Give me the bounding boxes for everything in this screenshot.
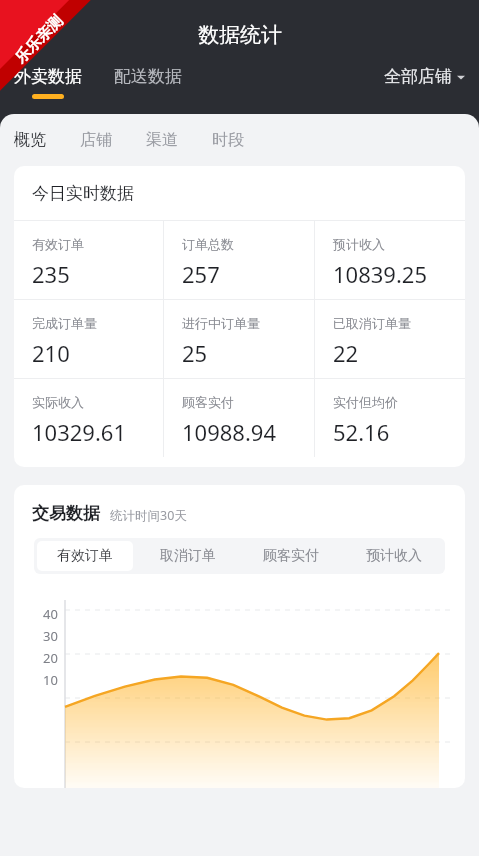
staticText: 外卖数据 bbox=[14, 66, 82, 87]
button[interactable]: 概览 bbox=[14, 130, 46, 150]
button[interactable]: 渠道 bbox=[146, 130, 178, 150]
staticText: 有效订单 bbox=[57, 547, 113, 565]
staticText: 10329.61 bbox=[32, 417, 126, 447]
staticText: 取消订单 bbox=[160, 547, 216, 565]
staticText: 乐乐亲测 bbox=[11, 12, 67, 67]
staticText: 配送数据 bbox=[114, 66, 182, 87]
staticText: 概览 bbox=[14, 130, 46, 150]
staticText: 完成订单量 bbox=[32, 315, 97, 331]
button[interactable]: 进行中订单量 bbox=[164, 300, 314, 378]
staticText: 10839.25 bbox=[333, 259, 427, 289]
staticText: 预计收入 bbox=[333, 236, 385, 252]
staticText: 30 bbox=[43, 627, 58, 645]
staticText: 预计收入 bbox=[366, 547, 422, 565]
staticText: 25 bbox=[182, 338, 208, 368]
button[interactable]: 实付但均价 bbox=[315, 379, 465, 457]
button[interactable]: 预计收入 bbox=[345, 541, 442, 571]
staticText: 40 bbox=[43, 605, 58, 623]
button[interactable]: 全部店铺 bbox=[384, 66, 465, 87]
staticText: 交易数据 bbox=[32, 503, 100, 524]
staticText: 22 bbox=[333, 338, 359, 368]
staticText: 52.16 bbox=[333, 417, 390, 447]
staticText: 实际收入 bbox=[32, 394, 84, 410]
staticText: 257 bbox=[182, 259, 220, 289]
staticText: 订单总数 bbox=[182, 236, 234, 252]
staticText: 渠道 bbox=[146, 130, 178, 150]
button[interactable]: 预计收入 bbox=[315, 221, 465, 299]
button[interactable]: 取消订单 bbox=[139, 541, 236, 571]
other: Select shop bbox=[457, 73, 465, 81]
button[interactable]: 顾客实付 bbox=[164, 379, 314, 457]
staticText: 235 bbox=[32, 259, 70, 289]
staticText: 顾客实付 bbox=[182, 394, 234, 410]
staticText: 已取消订单量 bbox=[333, 315, 411, 331]
button[interactable]: 时段 bbox=[212, 130, 244, 150]
button[interactable]: 店铺 bbox=[80, 130, 112, 150]
staticText: 210 bbox=[32, 338, 70, 368]
staticText: 实付但均价 bbox=[333, 394, 398, 410]
button[interactable]: 订单总数 bbox=[164, 221, 314, 299]
button[interactable]: 已取消订单量 bbox=[315, 300, 465, 378]
staticText: 顾客实付 bbox=[263, 547, 319, 565]
staticText: 有效订单 bbox=[32, 236, 84, 252]
button[interactable]: 有效订单 bbox=[14, 221, 163, 299]
staticText: 全部店铺 bbox=[384, 66, 452, 87]
staticText: 10988.94 bbox=[182, 417, 276, 447]
staticText: 20 bbox=[43, 649, 58, 667]
staticText: 今日实时数据 bbox=[32, 183, 134, 204]
staticText: 10 bbox=[43, 671, 58, 689]
staticText: 店铺 bbox=[80, 130, 112, 150]
staticText: 进行中订单量 bbox=[182, 315, 260, 331]
staticText: 数据统计 bbox=[198, 22, 282, 48]
staticText: 时段 bbox=[212, 130, 244, 150]
button[interactable]: 外卖数据 bbox=[14, 66, 82, 99]
button[interactable]: 有效订单 bbox=[37, 541, 133, 571]
staticText: 统计时间30天 bbox=[110, 507, 187, 524]
button[interactable]: 配送数据 bbox=[114, 66, 182, 87]
button[interactable]: 完成订单量 bbox=[14, 300, 163, 378]
button[interactable]: 实际收入 bbox=[14, 379, 163, 457]
button[interactable]: 顾客实付 bbox=[242, 541, 339, 571]
